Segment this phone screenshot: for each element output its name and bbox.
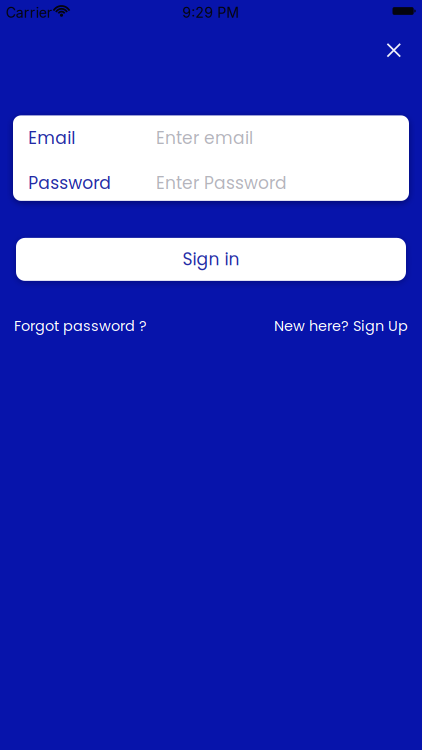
- staticText: 9:29 PM: [182, 4, 239, 21]
- staticText: Carrier: [6, 4, 52, 21]
- staticText: Sign in: [182, 247, 239, 271]
- staticText: Email: [28, 126, 75, 150]
- staticText: Forgot password ?: [14, 316, 147, 336]
- staticText: Enter Password: [156, 171, 287, 195]
- button[interactable]: Forgot password ?: [14, 316, 147, 336]
- staticText: New here? Sign Up: [274, 316, 408, 336]
- staticText: Enter email: [156, 126, 253, 150]
- button[interactable]: Sign in: [16, 238, 406, 281]
- button[interactable]: New here? Sign Up: [274, 316, 408, 336]
- button[interactable]: [379, 35, 409, 65]
- staticText: Password: [28, 171, 111, 195]
